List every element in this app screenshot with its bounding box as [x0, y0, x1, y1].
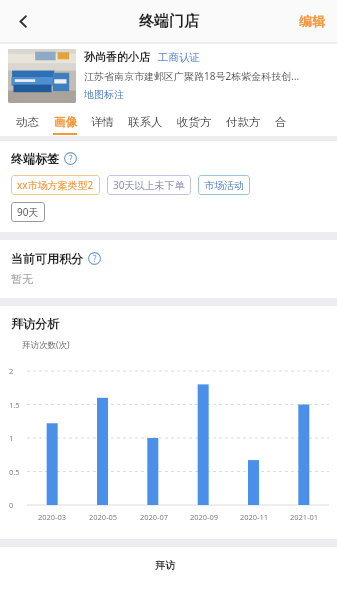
staticText: 2020-09 — [190, 512, 219, 522]
staticText: 0 — [9, 500, 14, 510]
staticText: 合 — [275, 115, 287, 129]
staticText: 1.5 — [9, 400, 20, 410]
staticText: 2020-11 — [240, 512, 269, 522]
staticText: 90天 — [17, 205, 39, 219]
staticText: 画像 — [54, 115, 77, 129]
button[interactable]: Help — [88, 252, 101, 265]
staticText: 0.5 — [9, 467, 20, 477]
staticText: 终端标签 — [11, 151, 59, 166]
button[interactable]: 画像 — [46, 108, 84, 136]
staticText: 2020-07 — [140, 512, 169, 522]
staticText: 当前可用积分 — [11, 251, 83, 266]
staticText: 暂无 — [11, 272, 33, 286]
staticText: 联系人 — [128, 115, 163, 129]
staticText: ? — [93, 253, 97, 264]
staticText: 孙尚香的小店 — [84, 50, 150, 64]
staticText: ? — [69, 153, 73, 164]
button[interactable]: Back — [7, 5, 39, 37]
staticText: 付款方 — [226, 115, 261, 129]
staticText: 工商认证 — [158, 51, 200, 64]
staticText: 2 — [9, 366, 14, 376]
button[interactable]: 编辑 — [296, 8, 328, 34]
button[interactable]: xx市场方案类型2 — [11, 175, 100, 195]
staticText: xx市场方案类型2 — [17, 178, 94, 192]
staticText: 动态 — [16, 115, 39, 129]
staticText: 江苏省南京市建邺区广聚路18号2栋紫金科技创… — [84, 69, 300, 83]
button[interactable]: 市场活动 — [198, 175, 250, 195]
staticText: 1 — [9, 433, 14, 443]
staticText: 地图标注 — [84, 88, 124, 101]
staticText: 2021-01 — [290, 512, 319, 522]
button[interactable]: 孙尚香的小店 — [0, 44, 337, 108]
staticText: 拜访分析 — [11, 316, 59, 331]
staticText: 30天以上未下单 — [113, 178, 185, 192]
button[interactable]: 收货方 — [170, 108, 219, 136]
button[interactable]: 动态 — [9, 108, 46, 136]
staticText: 收货方 — [177, 115, 212, 129]
staticText: 终端门店 — [139, 12, 199, 31]
staticText: 拜访次数(次) — [22, 339, 70, 351]
button[interactable]: 合 — [268, 108, 294, 136]
button[interactable]: 30天以上未下单 — [107, 175, 191, 195]
staticText: 2020-05 — [89, 512, 118, 522]
staticText: 拜访 — [155, 559, 175, 572]
staticText: 编辑 — [299, 13, 325, 29]
button[interactable]: 地图标注 — [84, 88, 124, 101]
button[interactable]: 90天 — [11, 202, 45, 222]
button[interactable]: Help — [64, 152, 77, 165]
staticText: 2020-03 — [38, 512, 67, 522]
staticText: 详情 — [91, 115, 114, 129]
button[interactable]: 付款方 — [219, 108, 268, 136]
button[interactable]: 联系人 — [121, 108, 170, 136]
button[interactable]: 详情 — [84, 108, 121, 136]
staticText: 市场活动 — [204, 179, 244, 192]
